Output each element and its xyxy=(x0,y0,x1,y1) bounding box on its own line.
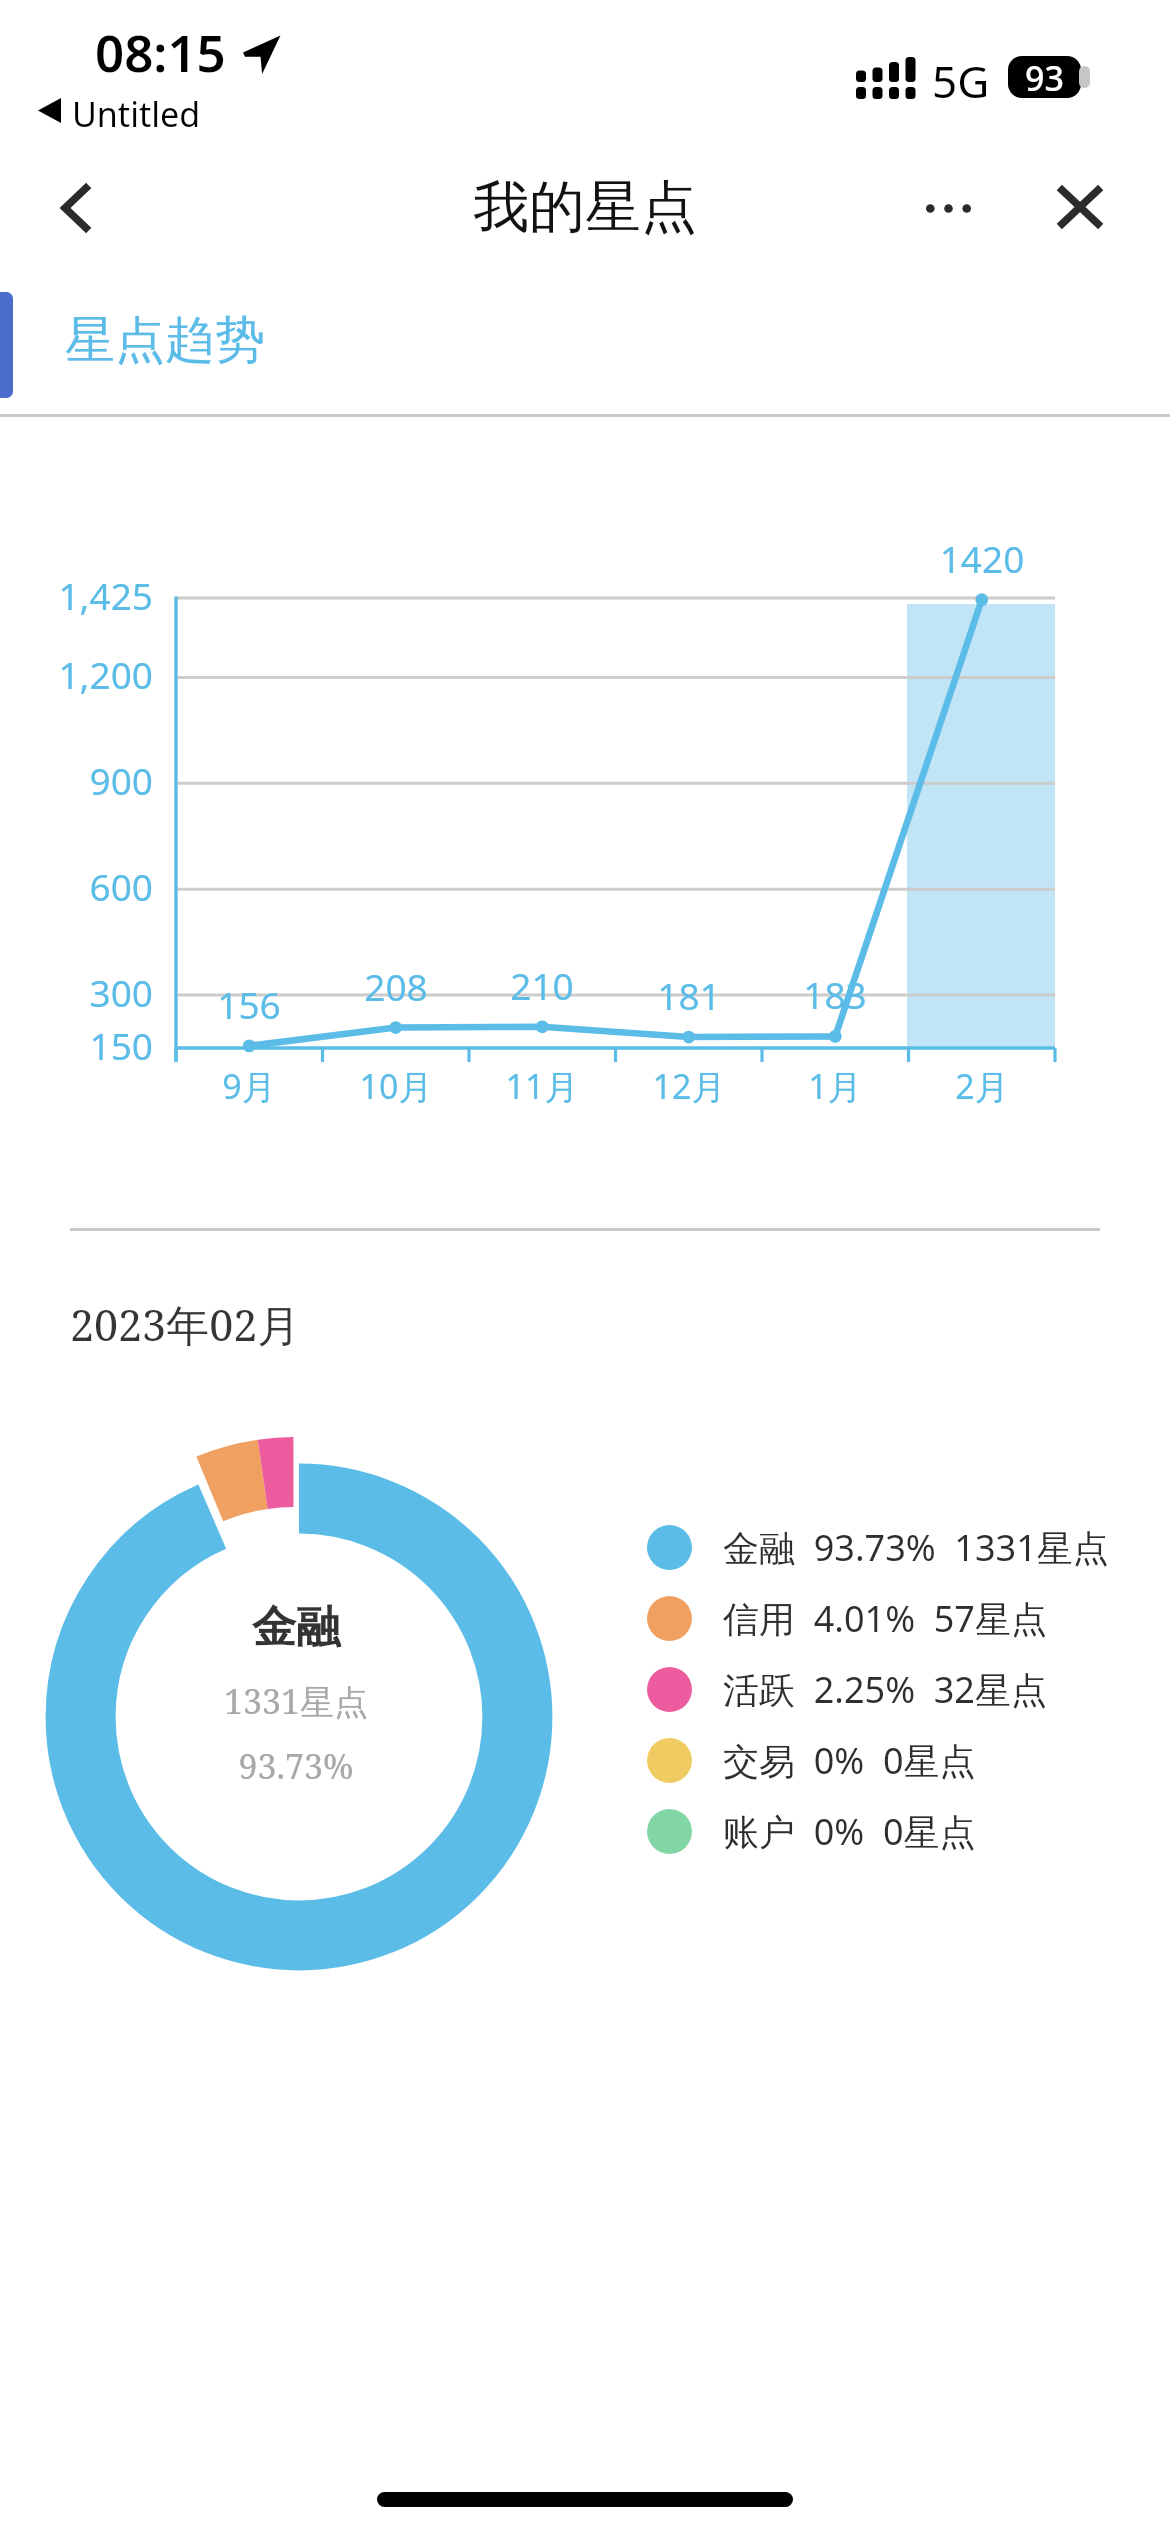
button[interactable]: 交易 0% 0星点 xyxy=(647,1725,1127,1796)
staticText: 2023年02月 xyxy=(70,1295,301,1354)
staticText: 600 xyxy=(0,861,153,911)
button[interactable]: Close xyxy=(1032,159,1128,255)
button[interactable]: 活跃 2.25% 32星点 xyxy=(647,1654,1127,1725)
staticText: 900 xyxy=(0,755,153,805)
staticText: 210 xyxy=(462,960,622,1010)
button[interactable]: 星点趋势 xyxy=(13,292,313,398)
staticText: 交易 0% 0星点 xyxy=(723,1736,976,1785)
staticText: 183 xyxy=(755,969,915,1019)
staticText: 93 xyxy=(1025,56,1064,97)
staticText: 150 xyxy=(0,1020,153,1070)
staticText: 星点趋势 xyxy=(65,309,265,372)
staticText: 208 xyxy=(316,961,476,1011)
staticText: 9月 xyxy=(169,1063,329,1109)
staticText: 08:15 xyxy=(95,17,226,86)
staticText: 181 xyxy=(609,970,769,1020)
staticText: 1331星点 xyxy=(146,1678,446,1724)
staticText: Untitled xyxy=(72,91,201,137)
staticText: 300 xyxy=(0,967,153,1017)
button[interactable]: Back xyxy=(28,160,123,255)
staticText: 1420 xyxy=(902,533,1062,583)
staticText: 金融 xyxy=(146,1600,446,1655)
staticText: 5G xyxy=(932,51,990,111)
staticText: 1,425 xyxy=(0,570,153,620)
staticText: 156 xyxy=(169,979,329,1029)
staticText: 1月 xyxy=(755,1063,915,1109)
button[interactable]: 信用 4.01% 57星点 xyxy=(647,1583,1127,1654)
staticText: 11月 xyxy=(462,1063,622,1109)
staticText: 账户 0% 0星点 xyxy=(723,1807,976,1856)
staticText: 我的星点 xyxy=(473,172,697,243)
button[interactable]: 账户 0% 0星点 xyxy=(647,1796,1127,1867)
staticText: 12月 xyxy=(609,1063,769,1109)
staticText: 10月 xyxy=(316,1063,476,1109)
button[interactable]: 金融 93.73% 1331星点 xyxy=(647,1512,1127,1583)
staticText: 2月 xyxy=(902,1063,1062,1109)
button[interactable]: More options xyxy=(900,160,996,256)
staticText: 93.73% xyxy=(146,1743,446,1789)
staticText: 活跃 2.25% 32星点 xyxy=(723,1665,1047,1714)
staticText: 金融 93.73% 1331星点 xyxy=(723,1523,1109,1572)
staticText: 1,200 xyxy=(0,649,153,699)
staticText: 信用 4.01% 57星点 xyxy=(723,1594,1047,1643)
